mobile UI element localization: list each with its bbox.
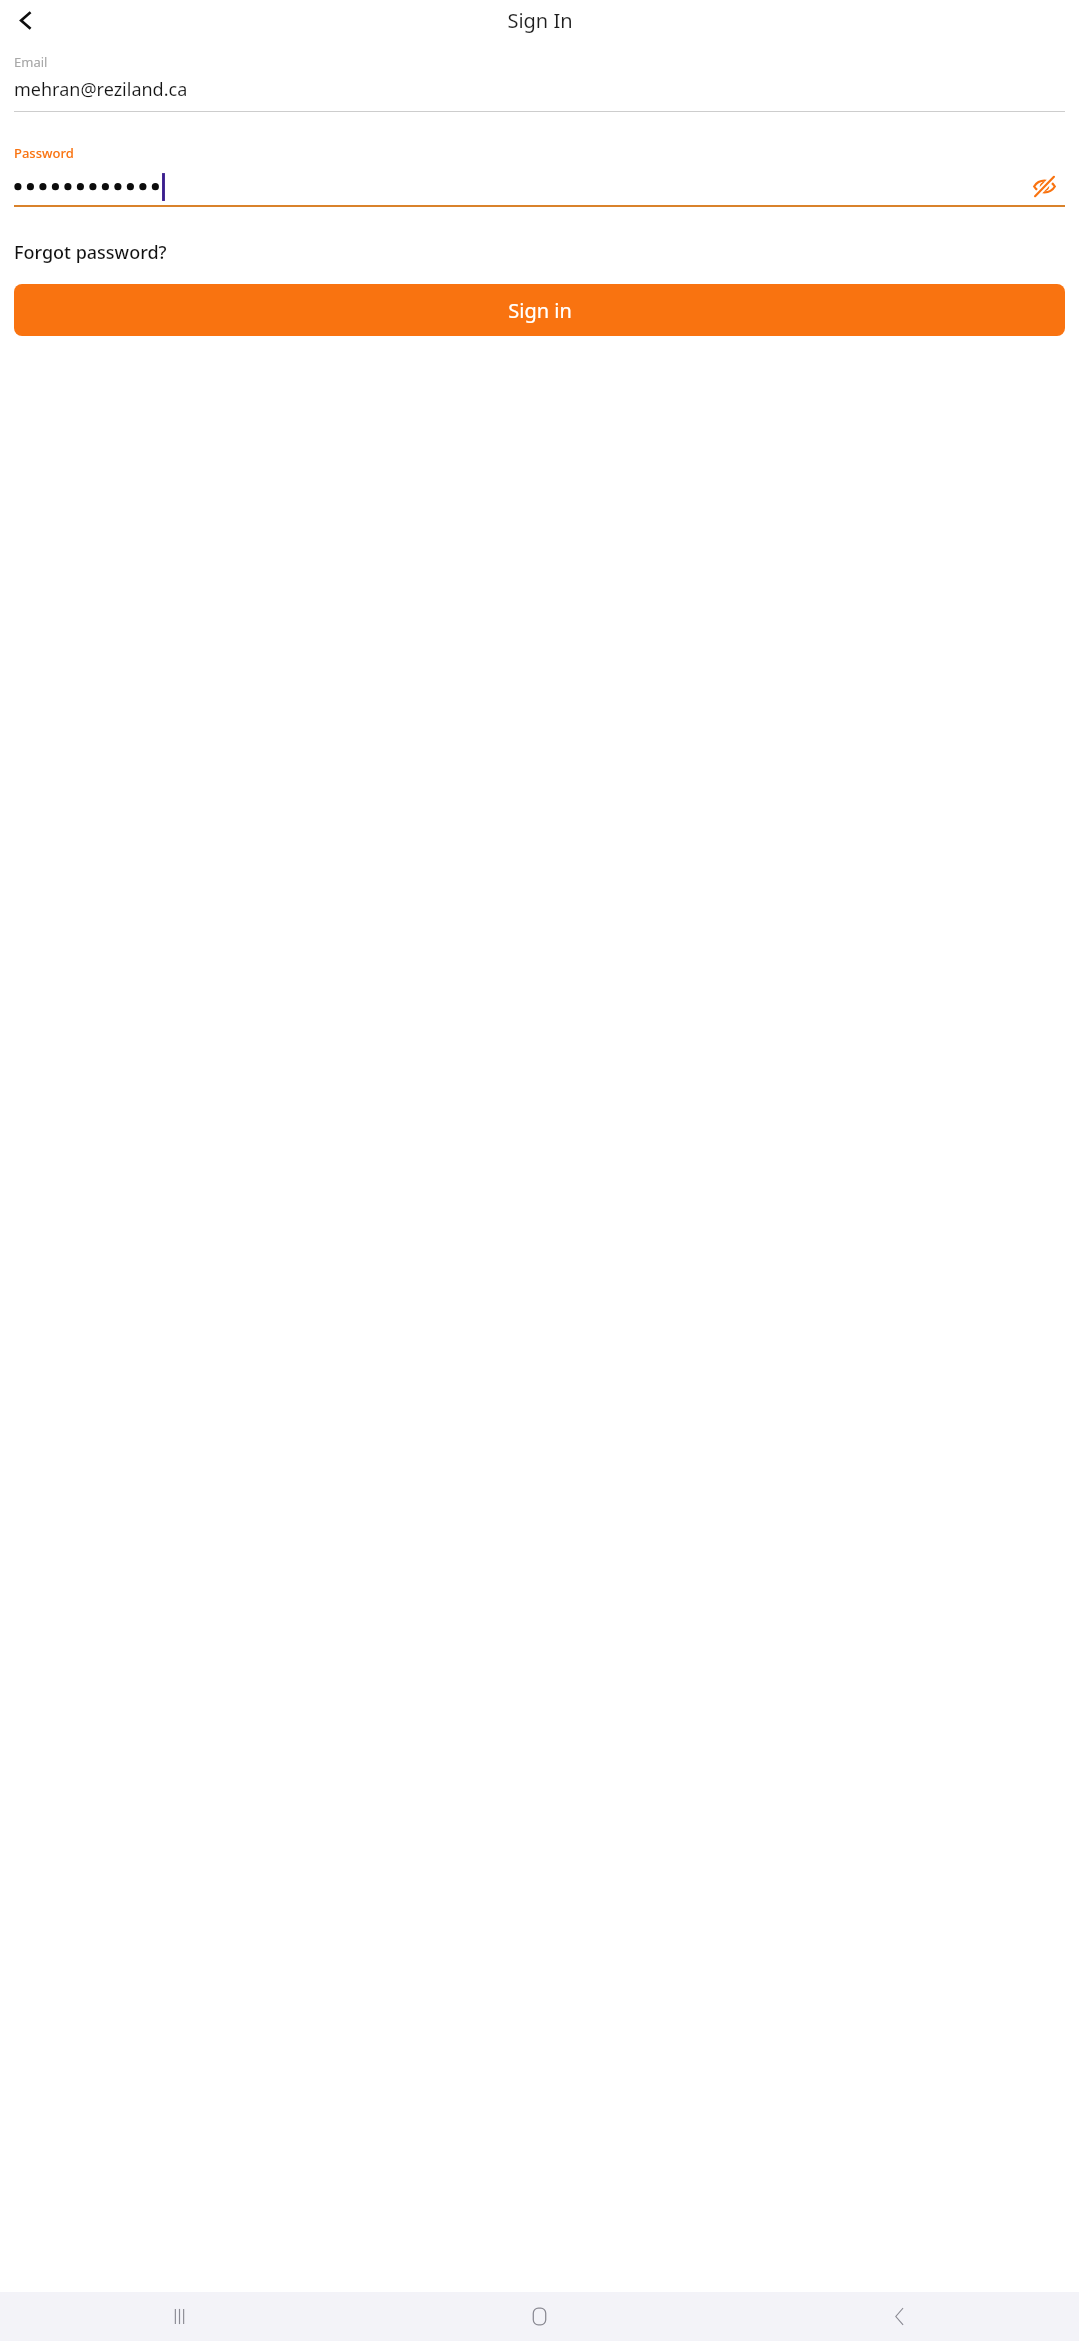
staticText: mehran@reziland.ca [14,77,188,102]
staticText: Forgot password? [14,240,167,265]
button[interactable]: Back [4,0,46,41]
button[interactable]: Hide password [14,169,1065,203]
button[interactable]: Forgot password? [14,240,167,265]
button[interactable]: mehran@reziland.ca [14,77,1065,102]
staticText: Email [14,53,48,71]
button[interactable]: Hide password [1023,169,1065,203]
button[interactable]: Recent apps [0,2292,359,2341]
button[interactable]: Sign in [14,284,1065,336]
button[interactable]: Back [719,2292,1079,2341]
staticText: Sign In [507,7,573,34]
staticText: Sign in [508,297,572,324]
button[interactable]: Home [359,2292,719,2341]
staticText: Password [14,144,74,162]
